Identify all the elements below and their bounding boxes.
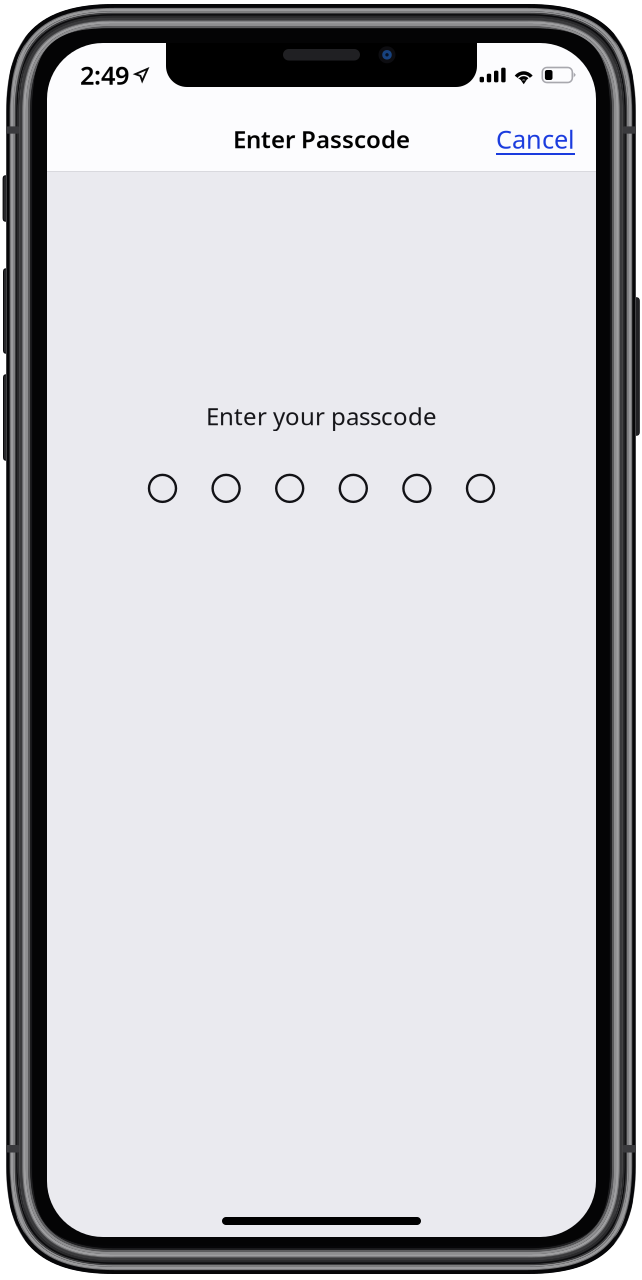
staticText: Enter Passcode [233,123,410,155]
button[interactable]: Cancel [496,122,575,156]
staticText: 2:49 [80,58,129,92]
staticText: Cancel [496,122,575,156]
staticText: Enter your passcode [206,400,437,432]
